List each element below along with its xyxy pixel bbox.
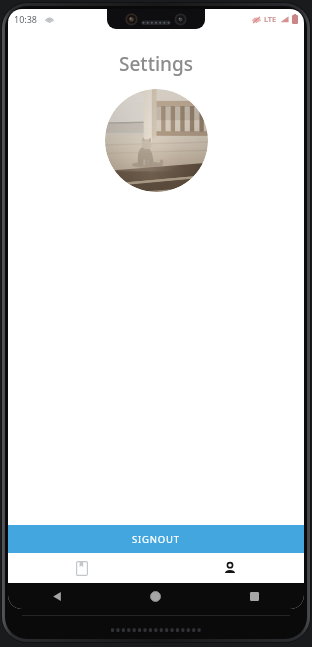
button[interactable]: Profile photo	[105, 89, 208, 192]
button[interactable]: SIGNOUT	[8, 525, 304, 553]
button[interactable]: Library	[8, 553, 156, 583]
button[interactable]: Recent apps	[205, 583, 304, 609]
staticText: SIGNOUT	[132, 533, 180, 546]
button[interactable]: Profile	[156, 553, 304, 583]
staticText: 10:38	[14, 13, 38, 25]
button[interactable]: Home	[106, 583, 205, 609]
button[interactable]: Back	[8, 583, 106, 609]
staticText: Settings	[8, 51, 304, 77]
staticText: LTE	[264, 14, 277, 24]
